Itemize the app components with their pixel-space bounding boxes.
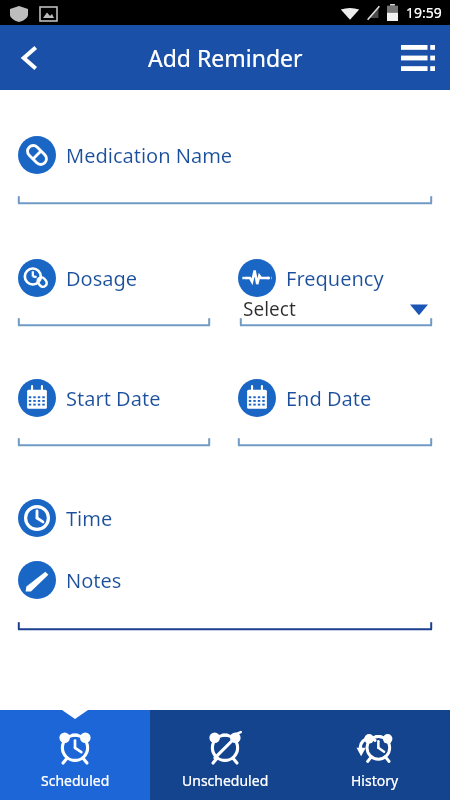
staticText: History xyxy=(351,771,399,790)
staticText: Start Date xyxy=(66,385,161,412)
button[interactable]: History xyxy=(300,710,450,800)
button[interactable]: Time xyxy=(18,496,113,540)
button[interactable]: Scheduled xyxy=(0,710,150,800)
button[interactable]: Start Date xyxy=(18,376,161,420)
button[interactable]: Dosage xyxy=(18,256,138,300)
button[interactable]: End Date xyxy=(238,376,372,420)
button[interactable]: Notes xyxy=(18,558,122,602)
staticText: Unscheduled xyxy=(182,771,269,790)
staticText: End Date xyxy=(286,385,372,412)
staticText: Dosage xyxy=(66,265,138,292)
button[interactable]: Unscheduled xyxy=(150,710,300,800)
staticText: Select xyxy=(243,296,296,322)
button[interactable]: Menu xyxy=(392,32,444,84)
staticText: 19:59 xyxy=(406,3,442,22)
staticText: Time xyxy=(66,505,113,532)
button[interactable]: Medication Name xyxy=(18,133,233,177)
staticText: Add Reminder xyxy=(148,42,303,73)
staticText: Scheduled xyxy=(41,771,110,790)
staticText: Notes xyxy=(66,567,122,594)
button[interactable]: Frequency xyxy=(238,256,384,300)
button[interactable]: Back xyxy=(4,32,56,84)
staticText: Frequency xyxy=(286,265,384,292)
staticText: Medication Name xyxy=(66,142,233,169)
button[interactable]: Select xyxy=(243,294,432,324)
